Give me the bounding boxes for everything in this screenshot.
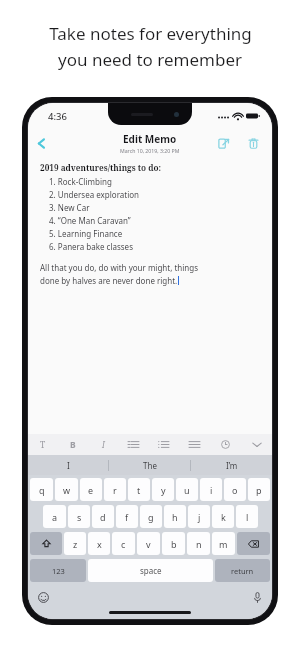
- button[interactable]: e: [80, 478, 102, 501]
- staticText: Take notes for everything: [49, 22, 252, 45]
- staticText: e: [88, 484, 94, 496]
- button[interactable]: g: [140, 505, 162, 528]
- staticText: 5. Learning Finance: [49, 228, 123, 239]
- staticText: I’m: [226, 460, 238, 471]
- button[interactable]: s: [68, 505, 90, 528]
- staticText: k: [221, 511, 226, 523]
- staticText: y: [161, 484, 166, 496]
- button[interactable]: return: [215, 559, 270, 582]
- button[interactable]: I’m: [191, 455, 272, 475]
- staticText: B: [70, 439, 76, 451]
- button[interactable]: Backspace: [237, 532, 270, 555]
- staticText: p: [256, 484, 262, 496]
- button[interactable]: Bold: [58, 434, 88, 455]
- staticText: done by halves are never done right.: [40, 275, 178, 286]
- button[interactable]: Italic: [88, 434, 118, 455]
- staticText: space: [140, 565, 162, 576]
- button[interactable]: n: [187, 532, 210, 555]
- staticText: I: [102, 439, 105, 451]
- button[interactable]: w: [55, 478, 78, 501]
- staticText: q: [39, 484, 45, 496]
- button[interactable]: o: [224, 478, 246, 501]
- staticText: d: [100, 511, 106, 523]
- button[interactable]: Shift: [30, 532, 62, 555]
- staticText: s: [77, 511, 82, 523]
- button[interactable]: k: [212, 505, 234, 528]
- staticText: z: [73, 538, 78, 550]
- staticText: I: [67, 460, 70, 471]
- button[interactable]: Dictate: [248, 588, 266, 606]
- button[interactable]: c: [112, 532, 135, 555]
- button[interactable]: t: [128, 478, 150, 501]
- staticText: b: [171, 538, 177, 550]
- button[interactable]: l: [236, 505, 258, 528]
- staticText: l: [246, 511, 249, 523]
- button[interactable]: m: [212, 532, 235, 555]
- button[interactable]: i: [200, 478, 222, 501]
- button[interactable]: j: [188, 505, 210, 528]
- button[interactable]: d: [92, 505, 114, 528]
- staticText: h: [172, 511, 178, 523]
- staticText: 123: [52, 566, 65, 576]
- staticText: a: [52, 511, 58, 523]
- staticText: c: [121, 538, 126, 550]
- staticText: t: [137, 484, 141, 496]
- button[interactable]: I: [28, 455, 108, 475]
- button[interactable]: x: [88, 532, 110, 555]
- button[interactable]: Text style: [28, 434, 58, 455]
- button[interactable]: List style 1: [118, 434, 148, 455]
- button[interactable]: 123: [30, 559, 86, 582]
- staticText: 1. Rock-Climbing: [49, 176, 112, 187]
- button[interactable]: Back: [28, 130, 54, 156]
- button[interactable]: u: [176, 478, 198, 501]
- staticText: Edit Memo: [123, 132, 177, 146]
- button[interactable]: List style 2: [148, 434, 179, 455]
- staticText: f: [125, 511, 129, 523]
- staticText: March 10, 2019, 3:20 PM: [120, 147, 180, 154]
- button[interactable]: h: [164, 505, 186, 528]
- staticText: All that you do, do with your might, thi…: [40, 262, 198, 273]
- staticText: you need to remember: [58, 48, 242, 71]
- button[interactable]: List style 3: [179, 434, 210, 455]
- button[interactable]: space: [88, 559, 213, 582]
- button[interactable]: Delete memo: [242, 132, 264, 154]
- staticText: 2. Undersea exploration: [49, 189, 140, 200]
- button[interactable]: Hide keyboard: [241, 434, 272, 455]
- button[interactable]: b: [162, 532, 185, 555]
- staticText: n: [196, 538, 202, 550]
- staticText: o: [232, 484, 238, 496]
- staticText: u: [184, 484, 190, 496]
- staticText: 3. New Car: [49, 202, 90, 213]
- button[interactable]: Share memo: [212, 132, 234, 154]
- staticText: 4:36: [48, 110, 67, 123]
- staticText: i: [210, 484, 213, 496]
- button[interactable]: r: [104, 478, 126, 501]
- button[interactable]: Emoji keyboard: [34, 588, 52, 606]
- staticText: return: [231, 566, 254, 576]
- button[interactable]: a: [43, 505, 66, 528]
- staticText: x: [97, 538, 102, 550]
- staticText: j: [198, 511, 201, 523]
- staticText: 6. Panera bake classes: [49, 241, 133, 252]
- button[interactable]: y: [152, 478, 174, 501]
- staticText: 2019 adventures/things to do:: [40, 162, 162, 173]
- staticText: 4. “One Man Caravan”: [49, 215, 131, 226]
- staticText: T: [40, 439, 46, 451]
- button[interactable]: q: [30, 478, 53, 501]
- staticText: m: [219, 538, 228, 550]
- button[interactable]: z: [64, 532, 86, 555]
- button[interactable]: The: [109, 455, 190, 475]
- button[interactable]: Insert time: [210, 434, 241, 455]
- staticText: w: [63, 484, 71, 496]
- button[interactable]: v: [137, 532, 160, 555]
- staticText: v: [146, 538, 151, 550]
- staticText: The: [143, 460, 157, 471]
- button[interactable]: f: [116, 505, 138, 528]
- staticText: r: [113, 484, 117, 496]
- staticText: g: [148, 511, 154, 523]
- button[interactable]: p: [248, 478, 270, 501]
